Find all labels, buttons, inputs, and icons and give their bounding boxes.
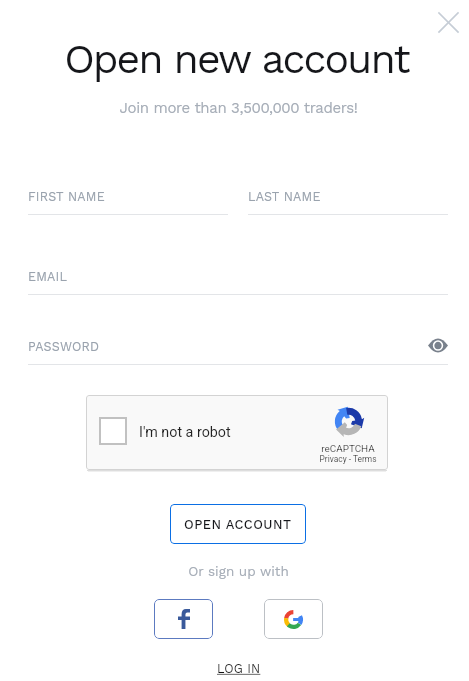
staticText: OPEN ACCOUNT — [184, 517, 292, 532]
staticText: LOG IN — [217, 661, 261, 676]
button[interactable]: OPEN ACCOUNT — [170, 504, 306, 544]
staticText: PASSWORD — [28, 339, 100, 354]
staticText: Open new account — [2, 35, 469, 83]
staticText: Or sign up with — [4, 563, 469, 579]
staticText: EMAIL — [28, 269, 68, 284]
staticText: LAST NAME — [248, 189, 321, 204]
staticText: Join more than 3,500,000 traders! — [4, 99, 469, 117]
staticText: reCAPTCHA — [313, 443, 383, 455]
staticText: Privacy - Terms — [313, 454, 383, 464]
button[interactable]: I'm not a robot — [99, 417, 127, 445]
button[interactable]: Show password — [422, 329, 454, 361]
button[interactable]: Close — [431, 5, 465, 39]
button[interactable]: Sign up with Google — [264, 599, 323, 639]
staticText: FIRST NAME — [28, 189, 105, 204]
button[interactable]: Sign up with Facebook — [154, 599, 213, 639]
button[interactable]: LOG IN — [209, 658, 269, 678]
staticText: I'm not a robot — [139, 424, 231, 441]
